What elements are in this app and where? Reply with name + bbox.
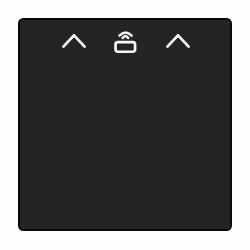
button[interactable]: Volume up — [62, 34, 86, 48]
button[interactable]: Channel up — [166, 34, 190, 48]
button[interactable]: Cast screen — [112, 28, 138, 54]
